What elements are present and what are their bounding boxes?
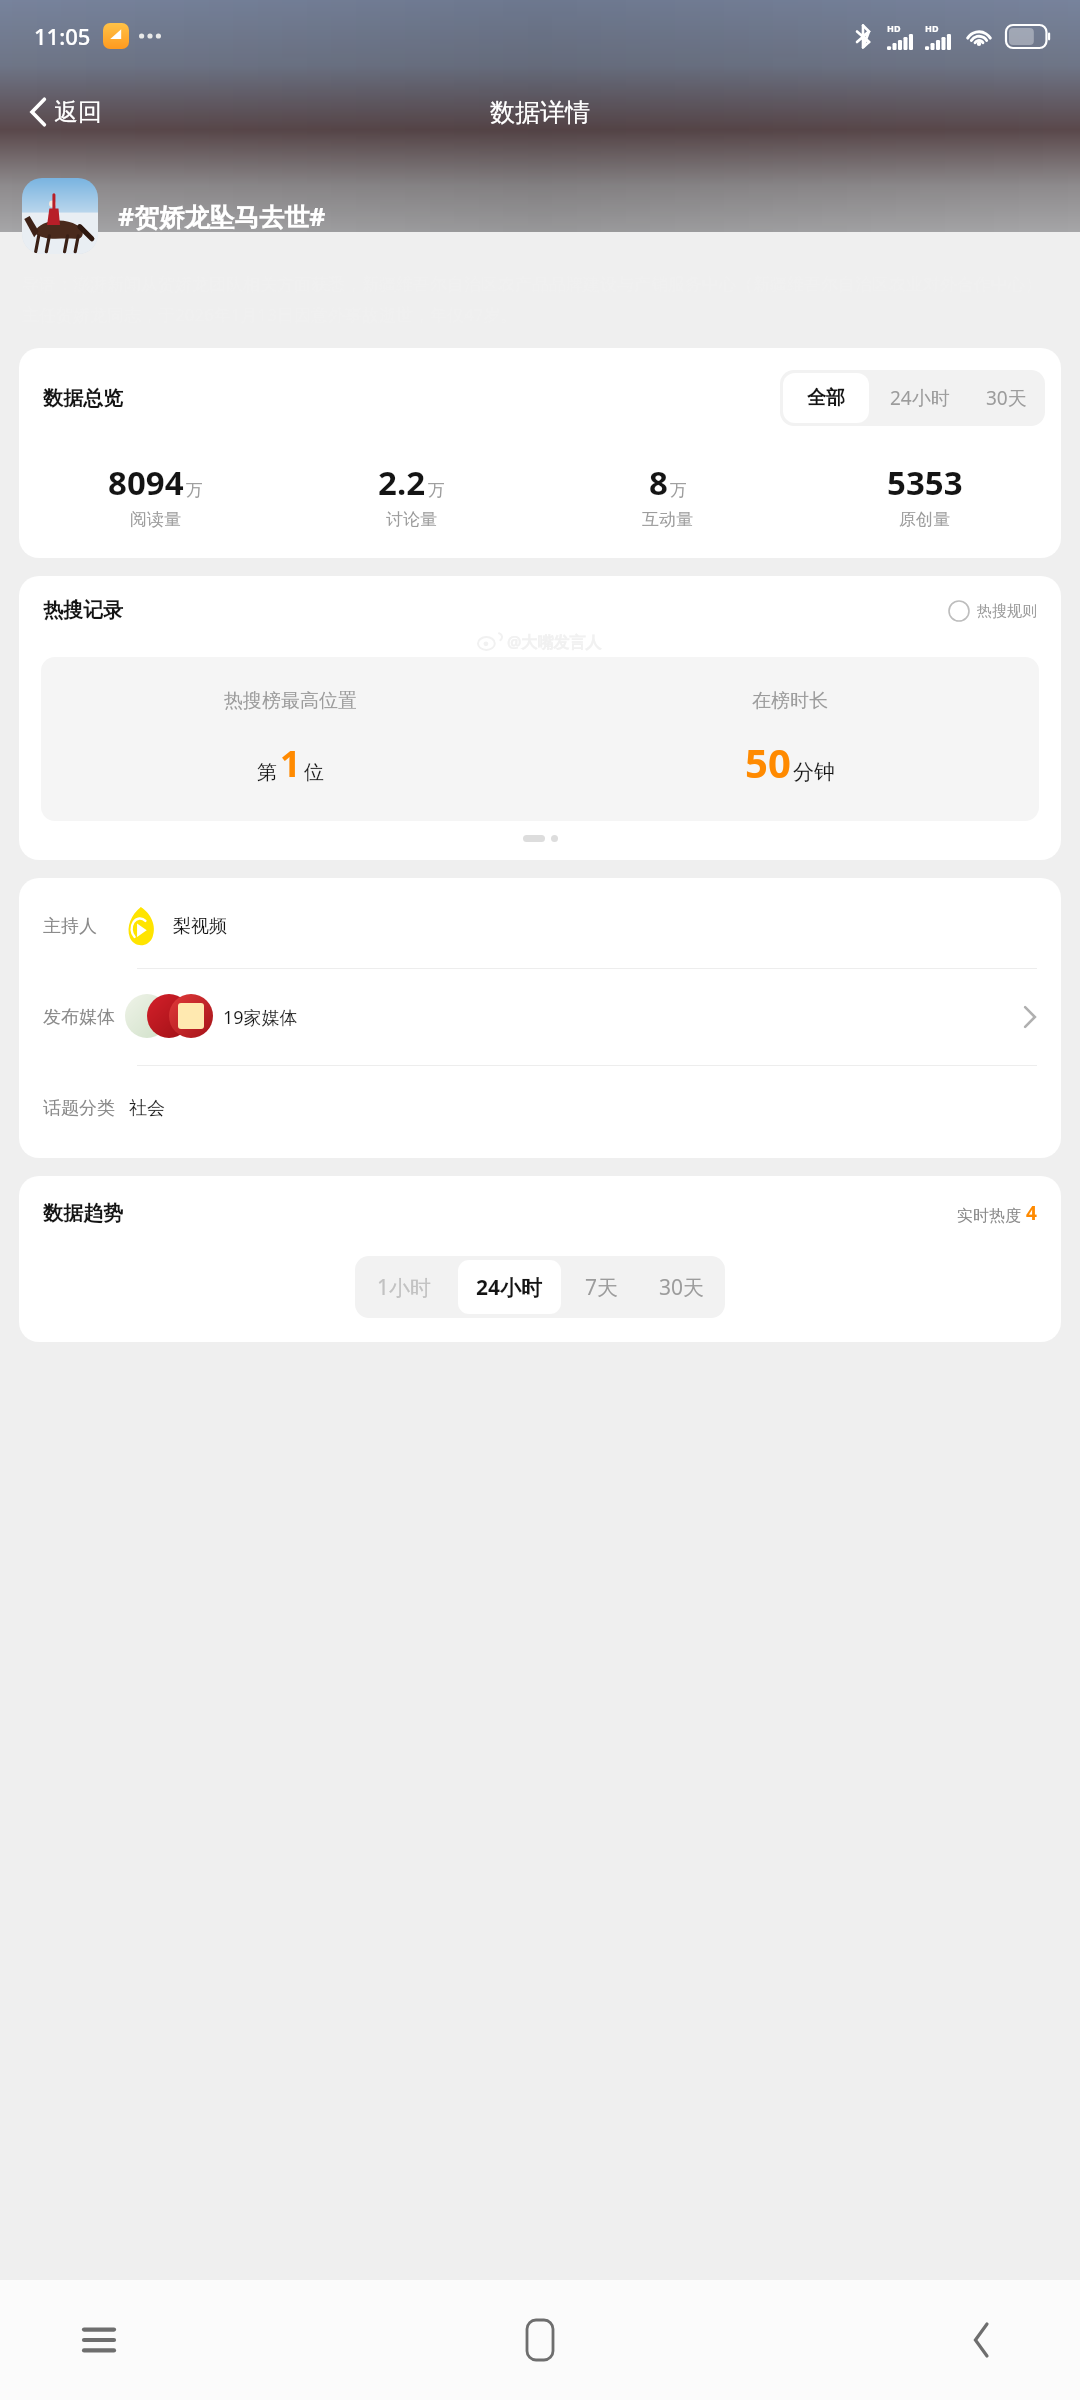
staticText: 30天 (659, 1273, 705, 1302)
staticText: HD (887, 22, 901, 34)
staticText: 主持人 (43, 915, 97, 938)
staticText: HD (925, 22, 939, 34)
button[interactable]: 话题分类 (19, 1066, 1061, 1150)
button[interactable]: 返回 (22, 88, 108, 136)
staticText: 热搜记录 (43, 598, 123, 623)
staticText: 2.2 (378, 460, 426, 505)
button[interactable]: 30天 (639, 1256, 725, 1318)
staticText: 1小时 (377, 1273, 432, 1302)
staticText: 8094 (108, 460, 184, 505)
button[interactable]: 24小时 (872, 370, 968, 426)
staticText: 互动量 (642, 509, 693, 530)
button[interactable]: Back (926, 2285, 1036, 2395)
staticText: 讨论量 (386, 509, 437, 530)
button[interactable]: 24小时 (458, 1260, 561, 1314)
button[interactable]: 8 (539, 460, 796, 530)
staticText: 数据总览 (43, 386, 123, 411)
staticText: #贺娇龙坠马去世# (118, 199, 326, 233)
button[interactable]: 主持人 (19, 884, 1061, 968)
button[interactable]: 发布媒体 (19, 969, 1061, 1065)
staticText: 8 (649, 460, 668, 505)
staticText: 第 (257, 760, 277, 785)
button[interactable]: 热搜规则 (948, 600, 1037, 622)
staticText: 11:05 (34, 21, 91, 51)
staticText: 数据趋势 (43, 1201, 123, 1226)
staticText: 全部 (807, 386, 845, 410)
button[interactable]: 7天 (565, 1256, 639, 1318)
staticText: 梨视频 (173, 915, 227, 938)
button[interactable]: 热搜榜最高位置 (41, 657, 1039, 821)
button[interactable]: #贺娇龙坠马去世# (22, 178, 1058, 254)
staticText: 位 (304, 760, 324, 785)
button[interactable]: 5353 (796, 460, 1053, 530)
button[interactable]: 2.2 (283, 460, 539, 530)
staticText: 万 (428, 480, 445, 501)
staticText: 社会 (129, 1097, 165, 1120)
staticText: 万 (670, 480, 687, 501)
staticText: 热搜规则 (977, 602, 1037, 621)
staticText: 24小时 (890, 385, 950, 411)
staticText: 30天 (986, 385, 1027, 411)
staticText: 数据详情 (490, 97, 590, 128)
button[interactable]: Recent apps (44, 2285, 154, 2395)
staticText: 4 (1026, 1200, 1037, 1226)
staticText: 实时热度 (957, 1206, 1021, 1226)
button[interactable]: Home (485, 2285, 595, 2395)
button[interactable]: 30天 (968, 370, 1045, 426)
staticText: 分钟 (793, 759, 835, 785)
staticText: 阅读量 (130, 509, 181, 530)
staticText: 发布媒体 (43, 1006, 115, 1029)
staticText: 50 (745, 735, 791, 789)
staticText: 1 (280, 739, 301, 788)
other: More media (1023, 1004, 1037, 1030)
staticText: 原创量 (899, 509, 950, 530)
staticText: 24小时 (476, 1273, 543, 1302)
staticText: 热搜榜最高位置 (224, 689, 357, 713)
staticText: 万 (186, 480, 203, 501)
button[interactable]: 8094 (27, 460, 283, 530)
button[interactable]: 全部 (783, 373, 869, 423)
staticText: @大嘴发言人 (507, 631, 602, 653)
button[interactable]: 1小时 (355, 1256, 454, 1318)
staticText: 在榜时长 (752, 689, 828, 713)
staticText: 19家媒体 (223, 1005, 298, 1030)
staticText: 5353 (887, 460, 963, 505)
staticText: 7天 (585, 1273, 619, 1302)
staticText: 返回 (54, 97, 102, 127)
staticText: 话题分类 (43, 1097, 115, 1120)
